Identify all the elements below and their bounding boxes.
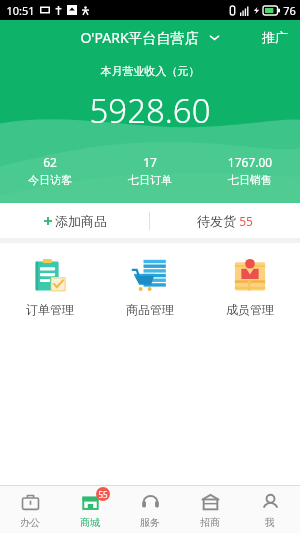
button[interactable]: 办公 [0,486,60,533]
staticText: 办公 [20,516,40,529]
staticText: O'PARK平台自营店 [80,28,199,47]
button[interactable]: 17 [100,152,200,189]
staticText: 76 [283,3,296,18]
staticText: 17 [100,154,200,170]
staticText: 添加商品 [55,213,107,229]
staticText: 待发货 [197,213,236,229]
button[interactable]: 添加商品 [0,203,149,238]
other: 订单管理 [32,258,68,294]
other: 商城 [81,493,100,512]
staticText: 55 [239,213,253,229]
button[interactable]: O'PARK平台自营店 [74,26,226,49]
staticText: 七日销售 [200,173,300,187]
button[interactable]: 订单管理 [0,255,100,319]
button[interactable]: 成员管理 [200,255,300,319]
staticText: 商品管理 [100,302,200,317]
staticText: 5928.60 [0,88,300,133]
other: 我 [261,493,280,512]
other: 成员管理 [232,258,268,294]
button[interactable]: 1767.00 [200,152,300,189]
staticText: 我 [265,516,275,529]
staticText: 今日访客 [0,173,100,187]
button[interactable]: 推广 [250,23,300,51]
button[interactable]: 我 [240,486,300,533]
button[interactable]: 服务 [120,486,180,533]
staticText: 55 [98,489,108,500]
staticText: 10:51 [6,3,35,18]
staticText: 订单管理 [0,302,100,317]
staticText: 成员管理 [200,302,300,317]
staticText: 招商 [200,516,220,529]
staticText: 62 [0,154,100,170]
staticText: 1767.00 [200,154,300,170]
other: 招商 [201,493,220,512]
button[interactable]: 62 [0,152,100,189]
other: 商品管理 [132,258,168,294]
button[interactable]: 待发货 [150,203,300,238]
staticText: 本月营业收入（元） [0,64,300,78]
button[interactable]: 招商 [180,486,240,533]
other: 服务 [141,493,160,512]
staticText: 七日订单 [100,173,200,187]
button[interactable]: 商城 [60,486,120,533]
staticText: 商城 [80,516,100,529]
button[interactable]: 商品管理 [100,255,200,319]
other: 办公 [21,493,40,512]
staticText: 服务 [140,516,160,529]
staticText: 推广 [262,29,288,45]
